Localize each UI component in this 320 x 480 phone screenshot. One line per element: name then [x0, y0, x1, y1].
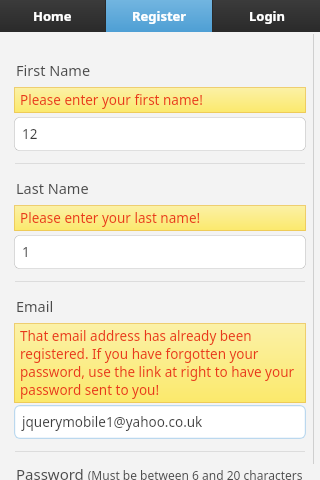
button[interactable]: jquerymobile1@yahoo.co.uk — [14, 405, 306, 439]
staticText: Home — [33, 7, 72, 25]
button[interactable]: 1 — [14, 235, 306, 269]
button[interactable]: Login — [213, 0, 320, 32]
staticText: Register — [132, 7, 187, 25]
staticText: That email address has already been regi… — [20, 327, 300, 399]
staticText: Last Name — [16, 178, 89, 198]
staticText: Please enter your last name! — [20, 209, 201, 227]
staticText: Please enter your first name! — [20, 91, 203, 109]
staticText: jquerymobile1@yahoo.co.uk — [22, 413, 203, 431]
staticText: Login — [249, 7, 285, 25]
staticText: Password (Must be between 6 and 20 chara… — [16, 464, 304, 480]
staticText: Email — [16, 296, 54, 316]
staticText: First Name — [16, 60, 91, 80]
button[interactable]: Home — [0, 0, 105, 32]
staticText: 1 — [22, 243, 30, 261]
button[interactable]: Register — [106, 0, 212, 32]
button[interactable]: 12 — [14, 117, 306, 151]
staticText: 12 — [22, 125, 38, 143]
